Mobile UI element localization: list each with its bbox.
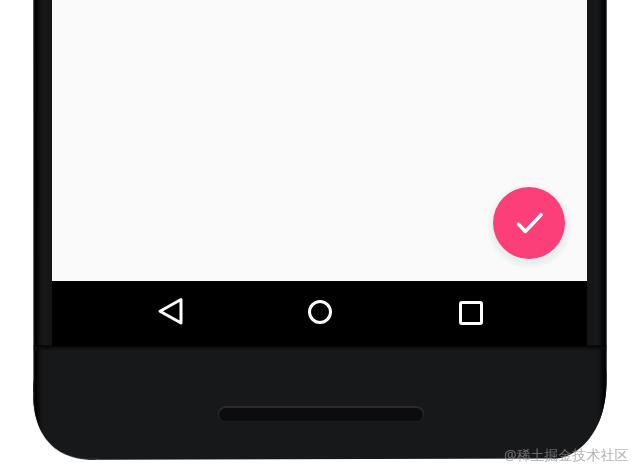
staticText: @稀土掘金技术社区 <box>504 445 629 464</box>
button[interactable]: Recent apps <box>454 295 488 329</box>
button[interactable]: Home <box>303 295 337 329</box>
button[interactable]: Back <box>153 294 187 328</box>
button[interactable]: Confirm <box>493 187 565 259</box>
